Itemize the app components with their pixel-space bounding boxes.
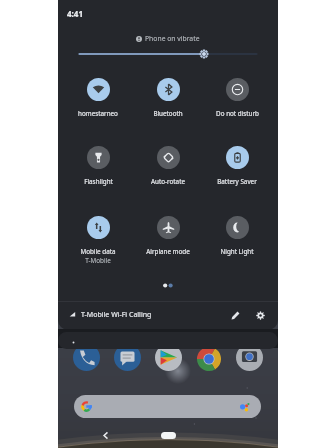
- staticText: Mobile data: [80, 247, 116, 256]
- button[interactable]: Search: [74, 395, 261, 418]
- button[interactable]: Airplane mode: [134, 216, 202, 256]
- staticText: Night Light: [220, 247, 254, 256]
- staticText: T-Mobile Wi-Fi Calling: [81, 310, 152, 320]
- button[interactable]: Camera: [236, 344, 263, 371]
- button[interactable]: Back: [101, 430, 110, 441]
- button[interactable]: Phone: [73, 344, 100, 371]
- staticText: Do not disturb: [216, 109, 259, 118]
- staticText: Phone on vibrate: [145, 34, 200, 43]
- button[interactable]: Settings: [252, 307, 268, 323]
- staticText: Bluetooth: [153, 109, 183, 118]
- button[interactable]: Chrome: [195, 345, 223, 373]
- button[interactable]: Play Store: [155, 344, 182, 371]
- staticText: Auto-rotate: [151, 177, 185, 186]
- staticText: Battery Saver: [217, 177, 257, 186]
- button[interactable]: Mobile data: [64, 216, 132, 265]
- staticText: 4:41: [67, 8, 83, 19]
- button[interactable]: Do not disturb: [203, 78, 271, 118]
- button[interactable]: Battery Saver: [203, 146, 271, 186]
- button[interactable]: homestarneo: [64, 78, 132, 118]
- button[interactable]: Flashlight: [64, 146, 132, 186]
- button[interactable]: Bluetooth: [134, 78, 202, 118]
- button[interactable]: Night Light: [203, 216, 271, 256]
- button[interactable]: Home: [161, 432, 176, 439]
- button[interactable]: Edit tiles: [227, 307, 243, 323]
- staticText: Flashlight: [84, 177, 113, 186]
- staticText: homestarneo: [78, 109, 118, 118]
- button[interactable]: Auto-rotate: [134, 146, 202, 186]
- staticText: Airplane mode: [146, 247, 190, 256]
- staticText: T-Mobile: [85, 256, 111, 265]
- button[interactable]: Messages: [114, 344, 141, 371]
